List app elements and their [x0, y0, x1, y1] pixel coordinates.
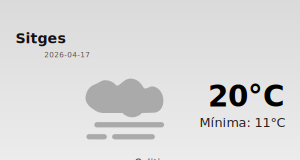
staticText: 2026-04-17 — [44, 51, 90, 59]
staticText: 20°C — [208, 79, 285, 113]
staticText: Sitges — [15, 30, 65, 47]
staticText: Calitja — [135, 157, 167, 160]
staticText: Mínima: 11°C — [199, 115, 285, 130]
